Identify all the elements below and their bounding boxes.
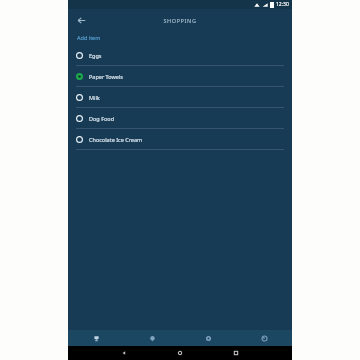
staticText: SHOPPING — [163, 17, 197, 24]
staticText: Eggs — [89, 52, 102, 59]
button[interactable]: Add item — [76, 33, 102, 42]
button[interactable]: Back — [72, 11, 90, 29]
staticText: Milk — [89, 94, 100, 101]
button[interactable]: Eggs — [68, 45, 292, 66]
button[interactable]: Dog Food — [68, 108, 292, 129]
button[interactable]: Lists — [68, 330, 124, 346]
staticText: 12:30 — [276, 1, 289, 8]
button[interactable]: Back — [96, 346, 152, 360]
staticText: Paper Towels — [89, 73, 123, 80]
button[interactable]: Settings — [180, 330, 236, 346]
button[interactable]: Home — [152, 346, 208, 360]
button[interactable]: Chocolate Ice Cream — [68, 129, 292, 150]
staticText: Chocolate Ice Cream — [89, 136, 143, 143]
staticText: Dog Food — [89, 115, 115, 122]
button[interactable]: Chat — [124, 330, 180, 346]
button[interactable]: Recents — [208, 346, 264, 360]
button[interactable]: Paper Towels — [68, 66, 292, 87]
button[interactable]: Profile — [236, 330, 292, 346]
button[interactable]: Milk — [68, 87, 292, 108]
staticText: Add item — [77, 34, 101, 41]
